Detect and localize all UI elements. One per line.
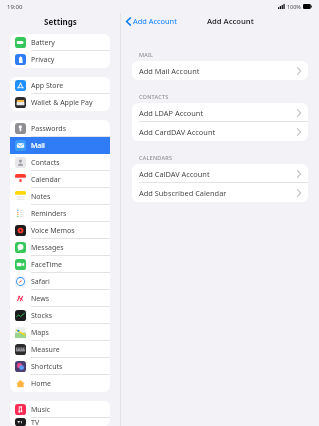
staticText: Shortcuts (31, 362, 63, 372)
staticText: Add CalDAV Account (139, 169, 297, 179)
button[interactable]: Add Mail Account (132, 61, 308, 80)
staticText: CONTACTS (139, 93, 169, 100)
staticText: 100% (287, 3, 301, 10)
button[interactable]: Privacy (10, 51, 110, 68)
staticText: Add Subscribed Calendar (139, 188, 297, 198)
staticText: Add Account (207, 16, 254, 26)
staticText: Reminders (31, 209, 67, 219)
staticText: Add CardDAV Account (139, 127, 297, 137)
staticText: Stocks (31, 311, 53, 321)
button[interactable]: Battery (10, 34, 110, 51)
button[interactable]: Stocks (10, 307, 110, 324)
staticText: MAIL (139, 51, 154, 58)
button[interactable]: Add LDAP Account (132, 103, 308, 122)
staticText: News (31, 294, 49, 304)
button[interactable]: Contacts (10, 154, 110, 171)
staticText: Privacy (31, 55, 55, 65)
staticText: Measure (31, 345, 60, 355)
staticText: Settings (44, 16, 77, 27)
button[interactable]: Mail (10, 137, 110, 154)
button[interactable]: TV (10, 418, 110, 426)
button[interactable]: Music (10, 401, 110, 418)
staticText: Contacts (31, 158, 60, 168)
staticText: CALENDARS (139, 154, 173, 161)
button[interactable]: News (10, 290, 110, 307)
staticText: Home (31, 379, 51, 389)
button[interactable]: Measure (10, 341, 110, 358)
staticText: Passwords (31, 124, 67, 134)
staticText: Music (31, 405, 51, 415)
staticText: Add LDAP Account (139, 108, 297, 118)
staticText: Maps (31, 328, 49, 338)
button[interactable]: Back (126, 16, 177, 26)
staticText: Mail (31, 141, 45, 151)
other: Back (126, 17, 131, 26)
staticText: App Store (31, 81, 64, 91)
button[interactable]: Add CalDAV Account (132, 164, 308, 183)
button[interactable]: Maps (10, 324, 110, 341)
staticText: Calendar (31, 175, 61, 185)
staticText: Safari (31, 277, 50, 287)
staticText: TV (31, 418, 40, 426)
button[interactable]: Add CardDAV Account (132, 122, 308, 141)
staticText: Wallet & Apple Pay (31, 98, 93, 108)
button[interactable]: Shortcuts (10, 358, 110, 375)
button[interactable]: Home (10, 375, 110, 392)
button[interactable]: Safari (10, 273, 110, 290)
staticText: Messages (31, 243, 64, 253)
button[interactable]: Messages (10, 239, 110, 256)
button[interactable]: Wallet & Apple Pay (10, 94, 110, 111)
staticText: Add Mail Account (139, 66, 297, 76)
button[interactable]: Calendar (10, 171, 110, 188)
button[interactable]: Reminders (10, 205, 110, 222)
button[interactable]: Notes (10, 188, 110, 205)
button[interactable]: Add Subscribed Calendar (132, 183, 308, 202)
button[interactable]: App Store (10, 77, 110, 94)
staticText: FaceTime (31, 260, 63, 270)
button[interactable]: Passwords (10, 120, 110, 137)
staticText: Add Account (133, 16, 177, 26)
staticText: Voice Memos (31, 226, 75, 236)
staticText: Notes (31, 192, 51, 202)
staticText: 19:00 (7, 3, 23, 11)
staticText: Battery (31, 38, 55, 48)
button[interactable]: Voice Memos (10, 222, 110, 239)
button[interactable]: FaceTime (10, 256, 110, 273)
